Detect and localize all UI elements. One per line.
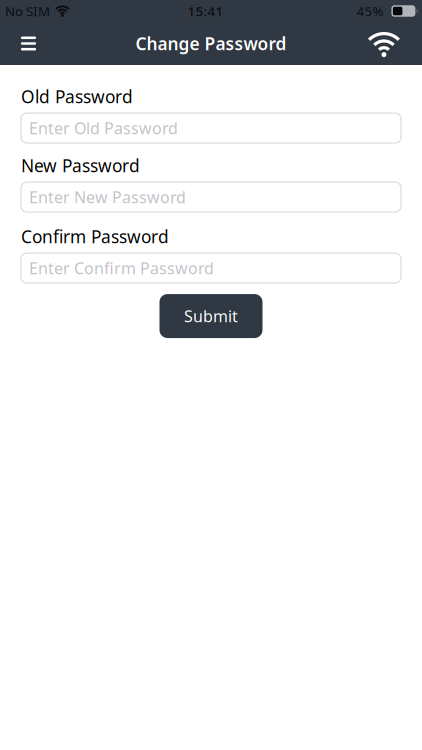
staticText: Enter Old Password	[29, 117, 178, 139]
staticText: New Password	[21, 154, 140, 177]
button[interactable]: Wi-Fi	[366, 25, 422, 62]
staticText: No SIM	[5, 2, 50, 20]
staticText: Enter New Password	[29, 186, 186, 208]
staticText: Submit	[184, 305, 238, 327]
staticText: 45%	[356, 2, 383, 20]
button[interactable]: Menu	[0, 27, 36, 60]
staticText: 15:41	[188, 2, 224, 20]
staticText: Enter Confirm Password	[29, 257, 214, 279]
button[interactable]: Submit	[159, 294, 262, 338]
staticText: Change Password	[135, 32, 286, 55]
staticText: Old Password	[21, 85, 133, 108]
staticText: Confirm Password	[21, 225, 169, 248]
